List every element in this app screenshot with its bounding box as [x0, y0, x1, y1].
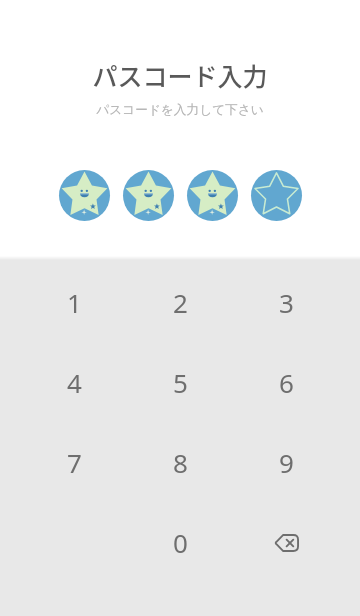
button[interactable]: 3: [233, 262, 339, 342]
staticText: 2: [173, 285, 188, 320]
staticText: 4: [67, 365, 82, 400]
staticText: 1: [67, 285, 82, 320]
staticText: 5: [173, 365, 188, 400]
staticText: 7: [67, 445, 82, 480]
staticText: パスコード入力: [92, 57, 268, 93]
button[interactable]: 0: [127, 502, 233, 582]
staticText: 0: [173, 525, 188, 560]
button[interactable]: Delete: [233, 502, 339, 582]
button[interactable]: 6: [233, 342, 339, 422]
button[interactable]: 8: [127, 422, 233, 502]
staticText: パスコードを入力して下さい: [96, 102, 264, 118]
staticText: 8: [173, 445, 188, 480]
button[interactable]: 9: [233, 422, 339, 502]
button[interactable]: 5: [127, 342, 233, 422]
staticText: 9: [279, 445, 294, 480]
button[interactable]: 4: [21, 342, 127, 422]
staticText: 6: [279, 365, 294, 400]
button[interactable]: 2: [127, 262, 233, 342]
button[interactable]: 7: [21, 422, 127, 502]
staticText: 3: [279, 285, 294, 320]
button[interactable]: 1: [21, 262, 127, 342]
